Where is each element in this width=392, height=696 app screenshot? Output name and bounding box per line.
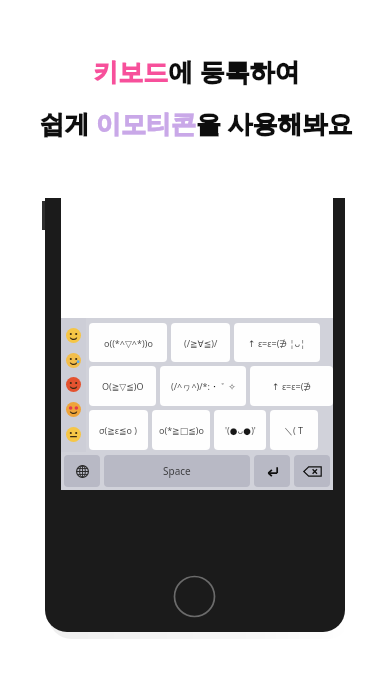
- staticText: 쉽게 이모티콘을 사용해봐요: [39, 106, 353, 140]
- staticText: o(*≧□≦)o: [159, 424, 204, 436]
- staticText: ↑ ε=ε=(∌ ¦ᴗ¦: [248, 337, 306, 349]
- staticText: σ(≧ε≦o ): [99, 424, 138, 436]
- button[interactable]: Emoji category: [66, 402, 81, 417]
- button[interactable]: Enter: [254, 455, 290, 487]
- staticText: o((*^▽^*))o: [104, 337, 153, 349]
- staticText: Space: [163, 464, 191, 478]
- button[interactable]: Backspace: [294, 455, 330, 487]
- button[interactable]: σ(≧ε≦o ): [89, 410, 148, 450]
- button[interactable]: (/^ヮ^)/*: ･ ﾟ ✧: [160, 366, 246, 406]
- staticText: (/^ヮ^)/*: ･ ﾟ ✧: [171, 380, 236, 392]
- button[interactable]: (/≧∀≦)/: [171, 323, 230, 362]
- button[interactable]: Emoji category: [66, 377, 81, 392]
- button[interactable]: Change language: [64, 455, 100, 487]
- button[interactable]: ↑ ε=ε=(∌ ¦ᴗ¦: [234, 323, 320, 362]
- staticText: (/≧∀≦)/: [184, 337, 218, 349]
- button[interactable]: ＼( T: [270, 410, 318, 450]
- button[interactable]: o((*^▽^*))o: [89, 323, 167, 362]
- button[interactable]: ↑ ε=ε=(∌: [250, 366, 333, 406]
- button[interactable]: o(*≧□≦)o: [152, 410, 210, 450]
- staticText: '(●ᴗ●)': [225, 424, 256, 436]
- button[interactable]: O(≧▽≦)O: [89, 366, 156, 406]
- button[interactable]: Space: [104, 455, 250, 487]
- staticText: ↑ ε=ε=(∌: [272, 380, 312, 392]
- staticText: ＼( T: [284, 424, 304, 436]
- staticText: O(≧▽≦)O: [102, 380, 144, 392]
- button[interactable]: Home: [173, 575, 216, 618]
- button[interactable]: Emoji category: [66, 427, 81, 442]
- button[interactable]: Emoji category: [66, 328, 81, 343]
- button[interactable]: Emoji category: [66, 353, 81, 368]
- button[interactable]: '(●ᴗ●)': [214, 410, 266, 450]
- staticText: 키보드에 등록하여: [93, 54, 300, 88]
